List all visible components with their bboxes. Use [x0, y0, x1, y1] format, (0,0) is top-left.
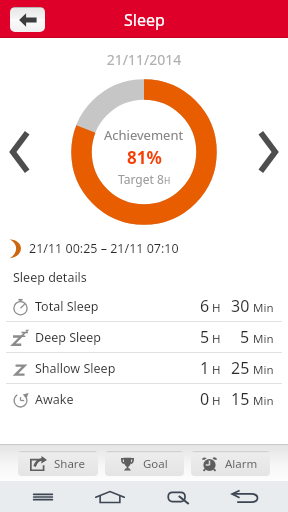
button[interactable]: Shallow Sleep: [0, 353, 288, 383]
staticText: Total Sleep: [35, 298, 99, 315]
button[interactable]: Home: [76, 481, 143, 512]
staticText: Min: [253, 331, 274, 347]
staticText: Awake: [35, 391, 74, 408]
staticText: 6: [200, 295, 210, 317]
staticText: H: [212, 393, 221, 409]
staticText: 25: [231, 357, 250, 379]
button[interactable]: Deep Sleep: [0, 322, 288, 352]
button[interactable]: Recent apps: [143, 481, 211, 512]
staticText: 1: [200, 357, 210, 379]
staticText: 21/11 00:25 – 21/11 07:10: [29, 240, 179, 257]
staticText: Alarm: [225, 456, 258, 472]
button[interactable]: Menu: [9, 481, 76, 512]
button[interactable]: Back: [10, 7, 45, 32]
staticText: Min: [253, 300, 274, 316]
staticText: Share: [54, 456, 85, 472]
staticText: Target 8: [118, 171, 164, 187]
button[interactable]: Awake: [0, 384, 288, 414]
button[interactable]: Back: [211, 481, 279, 512]
button[interactable]: Goal: [105, 451, 184, 476]
staticText: 15: [231, 388, 250, 410]
staticText: 5: [200, 326, 210, 348]
button[interactable]: Total Sleep: [0, 291, 288, 321]
button[interactable]: Previous day: [0, 127, 40, 177]
staticText: H: [164, 175, 171, 187]
staticText: Achievement: [104, 126, 184, 144]
button[interactable]: Alarm: [191, 451, 270, 476]
staticText: 21/11/2014: [0, 50, 288, 69]
staticText: H: [212, 331, 221, 347]
staticText: 81%: [127, 146, 162, 169]
staticText: Shallow Sleep: [35, 360, 116, 377]
button[interactable]: Share: [18, 451, 98, 476]
staticText: H: [212, 362, 221, 378]
staticText: Deep Sleep: [35, 329, 102, 346]
staticText: Sleep details: [13, 269, 87, 286]
staticText: Sleep: [124, 9, 165, 31]
button[interactable]: Next day: [248, 127, 288, 177]
staticText: Min: [253, 393, 274, 409]
staticText: Goal: [143, 456, 168, 472]
staticText: 30: [231, 295, 250, 317]
staticText: 5: [240, 326, 250, 348]
staticText: 0: [200, 388, 210, 410]
staticText: H: [212, 300, 221, 316]
staticText: Min: [253, 362, 274, 378]
